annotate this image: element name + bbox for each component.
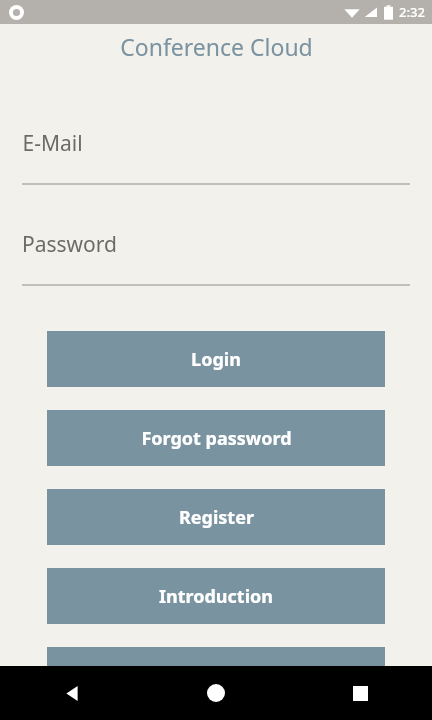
button[interactable]: Home bbox=[144, 666, 288, 720]
staticText: Conference Cloud bbox=[120, 31, 313, 62]
button[interactable]: Forgot password bbox=[47, 410, 385, 466]
staticText: Login bbox=[191, 347, 241, 372]
staticText: Languages bbox=[167, 663, 265, 688]
staticText: 2:32 bbox=[399, 3, 425, 21]
staticText: Register bbox=[179, 505, 254, 530]
button[interactable]: Introduction bbox=[47, 568, 385, 624]
staticText: Introduction bbox=[159, 584, 273, 609]
button[interactable]: Login bbox=[47, 331, 385, 387]
staticText: Forgot password bbox=[141, 426, 292, 451]
button[interactable]: Recent apps bbox=[288, 666, 432, 720]
staticText: E-Mail bbox=[22, 129, 83, 158]
button[interactable]: Back bbox=[0, 666, 144, 720]
staticText: Password bbox=[22, 230, 117, 259]
button[interactable]: Register bbox=[47, 489, 385, 545]
button[interactable]: Languages bbox=[47, 647, 385, 703]
